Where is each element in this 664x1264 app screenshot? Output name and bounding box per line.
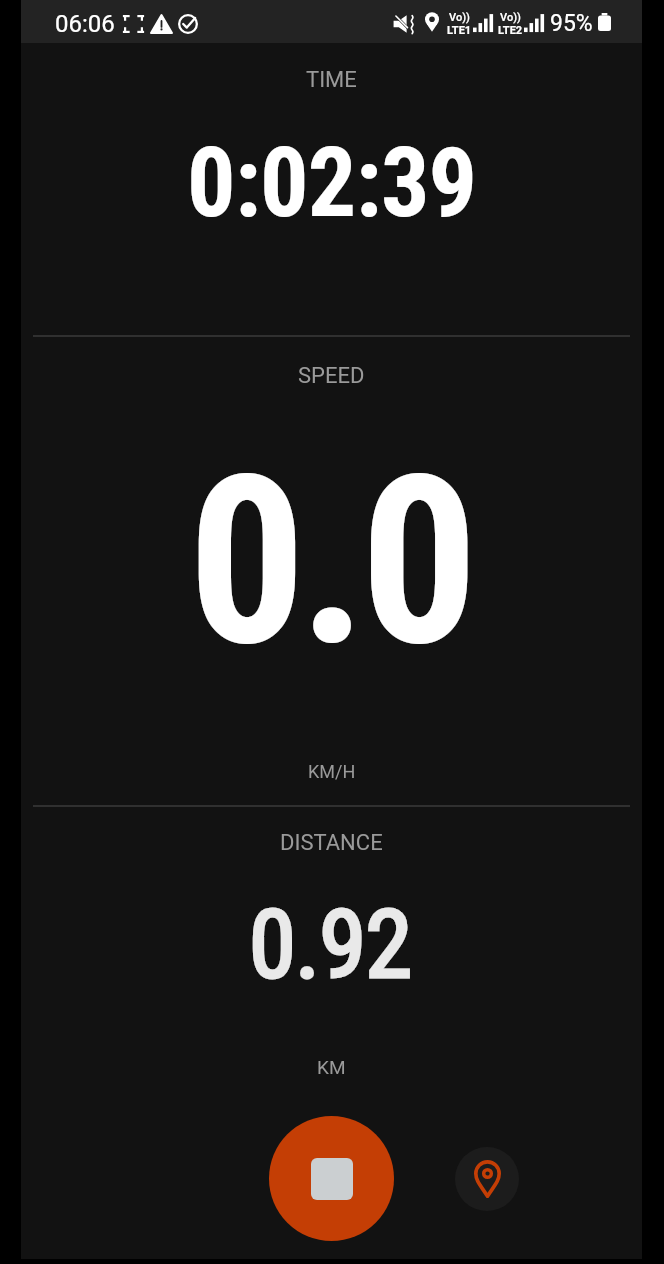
staticText: 0.92 [249,889,412,1000]
staticText: 0:02:39 [187,127,477,240]
staticText: 06:06 [55,10,115,38]
staticText: KM [317,1056,346,1078]
staticText: TIME [306,67,357,93]
staticText: Vo)) [500,11,521,24]
staticText: 95% [550,10,593,37]
button[interactable]: Stop workout [269,1116,394,1241]
staticText: 0.0 [188,426,472,699]
staticText: DISTANCE [280,830,383,856]
button[interactable]: Show location on map [455,1147,519,1211]
staticText: LTE2 [498,24,523,37]
staticText: Vo)) [449,11,470,24]
staticText: LTE1 [447,24,472,37]
staticText: SPEED [298,363,365,389]
staticText: KM/H [308,761,356,782]
